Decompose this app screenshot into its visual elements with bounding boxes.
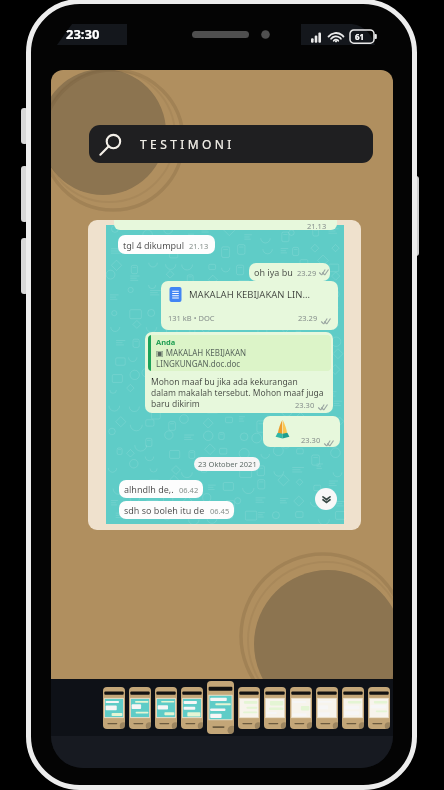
button[interactable] [290, 687, 312, 729]
staticText: 23.29 [298, 313, 318, 323]
staticText: 06.45 [210, 506, 230, 516]
button[interactable] [207, 681, 234, 734]
button[interactable]: TESTIMONI [89, 125, 373, 163]
staticText: 21.13 [307, 221, 327, 230]
button[interactable]: 21.13 [88, 220, 361, 530]
staticText: MAKALAH KEBIJAKAN LIN… [189, 288, 310, 301]
staticText: 23.30 [295, 400, 315, 410]
staticText: 23 Oktober 2021 [198, 459, 257, 469]
staticText: Mohon maaf bu jika ada kekurangan dalam … [151, 376, 324, 409]
staticText: 131 kB • DOC [168, 313, 215, 323]
button[interactable] [155, 687, 177, 729]
staticText: 61 [355, 31, 365, 42]
button[interactable] [316, 687, 338, 729]
button[interactable] [264, 687, 286, 729]
staticText: oh iya bu [254, 266, 293, 278]
staticText: sdh so boleh itu de [124, 504, 205, 516]
staticText: 06.42 [179, 485, 199, 495]
staticText: 23.29 [297, 268, 317, 278]
staticText: 23.30 [301, 435, 321, 445]
button[interactable] [368, 687, 390, 729]
staticText: Anda [156, 337, 176, 347]
staticText: TESTIMONI [140, 136, 235, 152]
staticText: tgl 4 dikumpul [123, 239, 184, 251]
button[interactable] [103, 687, 125, 729]
staticText: alhndlh de,. [124, 483, 174, 495]
button[interactable] [238, 687, 260, 729]
button[interactable] [129, 687, 151, 729]
staticText: 23:30 [66, 25, 100, 43]
staticText: ▣ MAKALAH KEBIJAKAN LINGKUNGAN.doc.doc [156, 347, 247, 369]
button[interactable] [342, 687, 364, 729]
staticText: 21.13 [189, 241, 209, 251]
button[interactable]: Scroll to bottom [315, 488, 337, 510]
button[interactable] [181, 687, 203, 729]
